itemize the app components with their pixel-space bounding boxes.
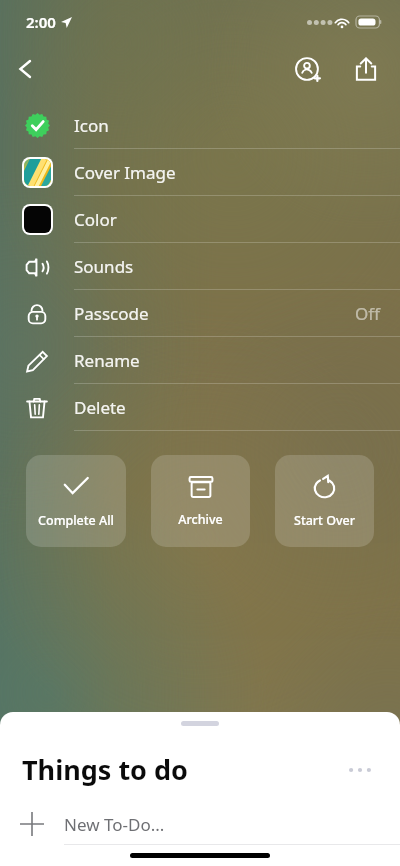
button[interactable]: Passcode (0, 290, 400, 337)
staticText: Icon (74, 114, 109, 137)
staticText: Off (355, 302, 380, 325)
button[interactable]: Share (344, 47, 388, 91)
button[interactable]: New To-Do... (0, 804, 400, 844)
button[interactable]: Start Over (275, 455, 374, 547)
button[interactable]: Color (0, 196, 400, 243)
staticText: Delete (74, 396, 126, 419)
button[interactable]: Complete All (26, 455, 126, 547)
staticText: Sounds (74, 255, 134, 278)
button[interactable]: Cover Image (0, 149, 400, 196)
button[interactable]: Rename (0, 337, 400, 384)
staticText: Rename (74, 349, 140, 372)
button[interactable]: Back (4, 47, 48, 91)
button[interactable]: Delete (0, 384, 400, 431)
staticText: Passcode (74, 302, 149, 325)
button[interactable]: Icon (0, 102, 400, 149)
staticText: Archive (178, 511, 223, 528)
staticText: Start Over (294, 512, 355, 529)
button[interactable]: Sounds (0, 243, 400, 290)
staticText: 2:00 (26, 12, 56, 32)
staticText: Complete All (38, 512, 114, 529)
staticText: Things to do (22, 751, 188, 788)
button[interactable]: Archive (151, 455, 250, 547)
staticText: New To-Do... (64, 813, 165, 836)
staticText: Color (74, 208, 117, 231)
staticText: Cover Image (74, 161, 176, 184)
button[interactable]: More options (342, 752, 378, 788)
button[interactable]: Add person (286, 47, 330, 91)
